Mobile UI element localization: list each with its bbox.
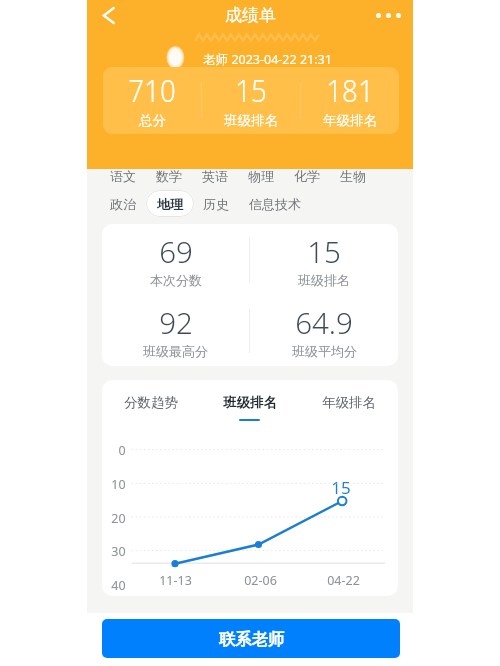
staticText: 班级排名 [223,394,277,411]
staticText: 20 [111,510,126,527]
button[interactable]: 联系老师 [102,619,400,658]
staticText: 班级最高分 [143,343,208,359]
staticText: 10 [111,476,126,493]
button[interactable]: 信息技术 [249,193,301,215]
staticText: 92 [159,302,193,342]
staticText: 15 [307,231,341,271]
button[interactable]: 历史 [203,193,229,215]
button[interactable]: 生物 [340,165,366,187]
staticText: 本次分数 [150,272,202,288]
staticText: 历史 [203,196,229,212]
button[interactable]: 地理 [146,190,194,217]
staticText: 年级排名 [323,112,377,129]
staticText: 语文 [110,168,136,184]
button[interactable]: 语文 [110,165,136,187]
staticText: 地理 [157,196,183,212]
staticText: 40 [111,577,126,594]
staticText: 英语 [202,168,228,184]
staticText: 02-06 [244,572,277,589]
staticText: 物理 [248,168,274,184]
staticText: 11-13 [159,572,192,589]
staticText: 生物 [340,168,366,184]
staticText: 信息技术 [249,196,301,212]
button[interactable]: 数学 [156,165,182,187]
button[interactable]: 政治 [110,193,136,215]
staticText: 分数趋势 [124,394,178,411]
staticText: 69 [159,231,193,271]
button[interactable]: Back [102,5,115,26]
staticText: 30 [111,543,126,560]
staticText: 15 [235,69,267,111]
button[interactable]: More options [376,13,401,18]
staticText: 710 [128,69,176,111]
staticText: 班级排名 [224,112,278,129]
button[interactable]: 化学 [294,165,320,187]
button[interactable]: 班级排名 [200,380,299,424]
button[interactable]: 英语 [202,165,228,187]
staticText: 成绩单 [225,5,276,26]
staticText: 班级排名 [298,272,350,288]
staticText: 0 [118,442,126,459]
staticText: 政治 [110,196,136,212]
button[interactable]: 物理 [248,165,274,187]
staticText: 老师 2023-04-22 21:31 [203,51,332,68]
staticText: 64.9 [295,302,353,342]
staticText: 数学 [156,168,182,184]
button[interactable]: 年级排名 [299,380,398,424]
staticText: 04-22 [327,572,360,589]
staticText: 总分 [139,112,166,129]
staticText: 年级排名 [322,394,376,411]
staticText: 联系老师 [219,629,284,649]
staticText: 15 [331,476,351,499]
button[interactable]: 分数趋势 [102,380,200,424]
staticText: 班级平均分 [292,343,357,359]
staticText: 化学 [294,168,320,184]
staticText: 181 [326,69,374,111]
